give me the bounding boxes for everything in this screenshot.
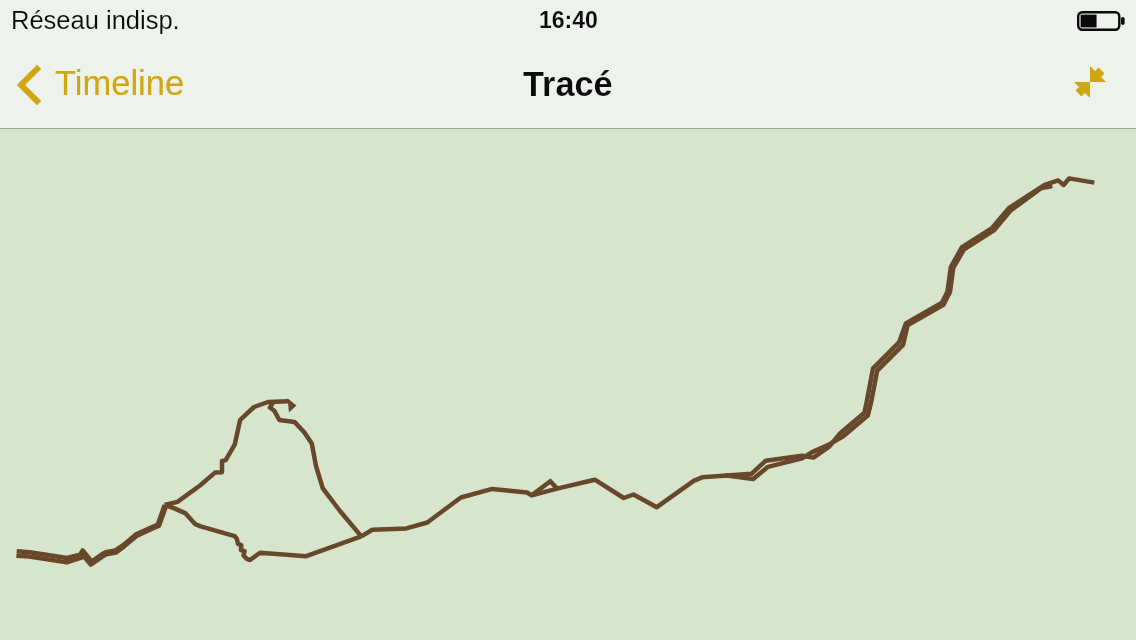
staticText: 16:40 [539, 7, 598, 33]
button[interactable] [0, 129, 1136, 640]
staticText: Tracé [523, 65, 613, 103]
staticText: Réseau indisp. [11, 6, 180, 34]
button[interactable]: Exit full screen [1070, 62, 1110, 102]
button[interactable]: Timeline [0, 56, 197, 113]
staticText: Timeline [55, 64, 185, 103]
